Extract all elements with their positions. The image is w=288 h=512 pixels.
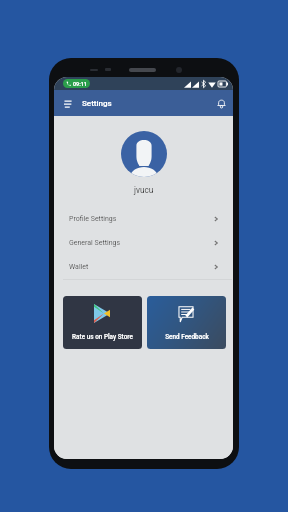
staticText: Send Feedback bbox=[165, 333, 209, 341]
staticText: Settings bbox=[82, 99, 112, 108]
button[interactable]: Notifications bbox=[215, 97, 228, 110]
button[interactable]: Wallet bbox=[54, 255, 233, 279]
staticText: jvucu bbox=[134, 185, 154, 195]
button[interactable]: Send Feedback bbox=[147, 296, 226, 349]
staticText: Wallet bbox=[69, 263, 89, 271]
button[interactable]: Profile Settings bbox=[54, 207, 233, 231]
staticText: General Settings bbox=[69, 239, 121, 247]
button[interactable]: Rate us on Play Store bbox=[63, 296, 142, 349]
staticText: 09:11 bbox=[73, 81, 87, 87]
staticText: Rate us on Play Store bbox=[72, 333, 133, 341]
button[interactable]: General Settings bbox=[54, 231, 233, 255]
staticText: Profile Settings bbox=[69, 215, 117, 223]
button[interactable]: Open navigation menu bbox=[59, 95, 76, 112]
